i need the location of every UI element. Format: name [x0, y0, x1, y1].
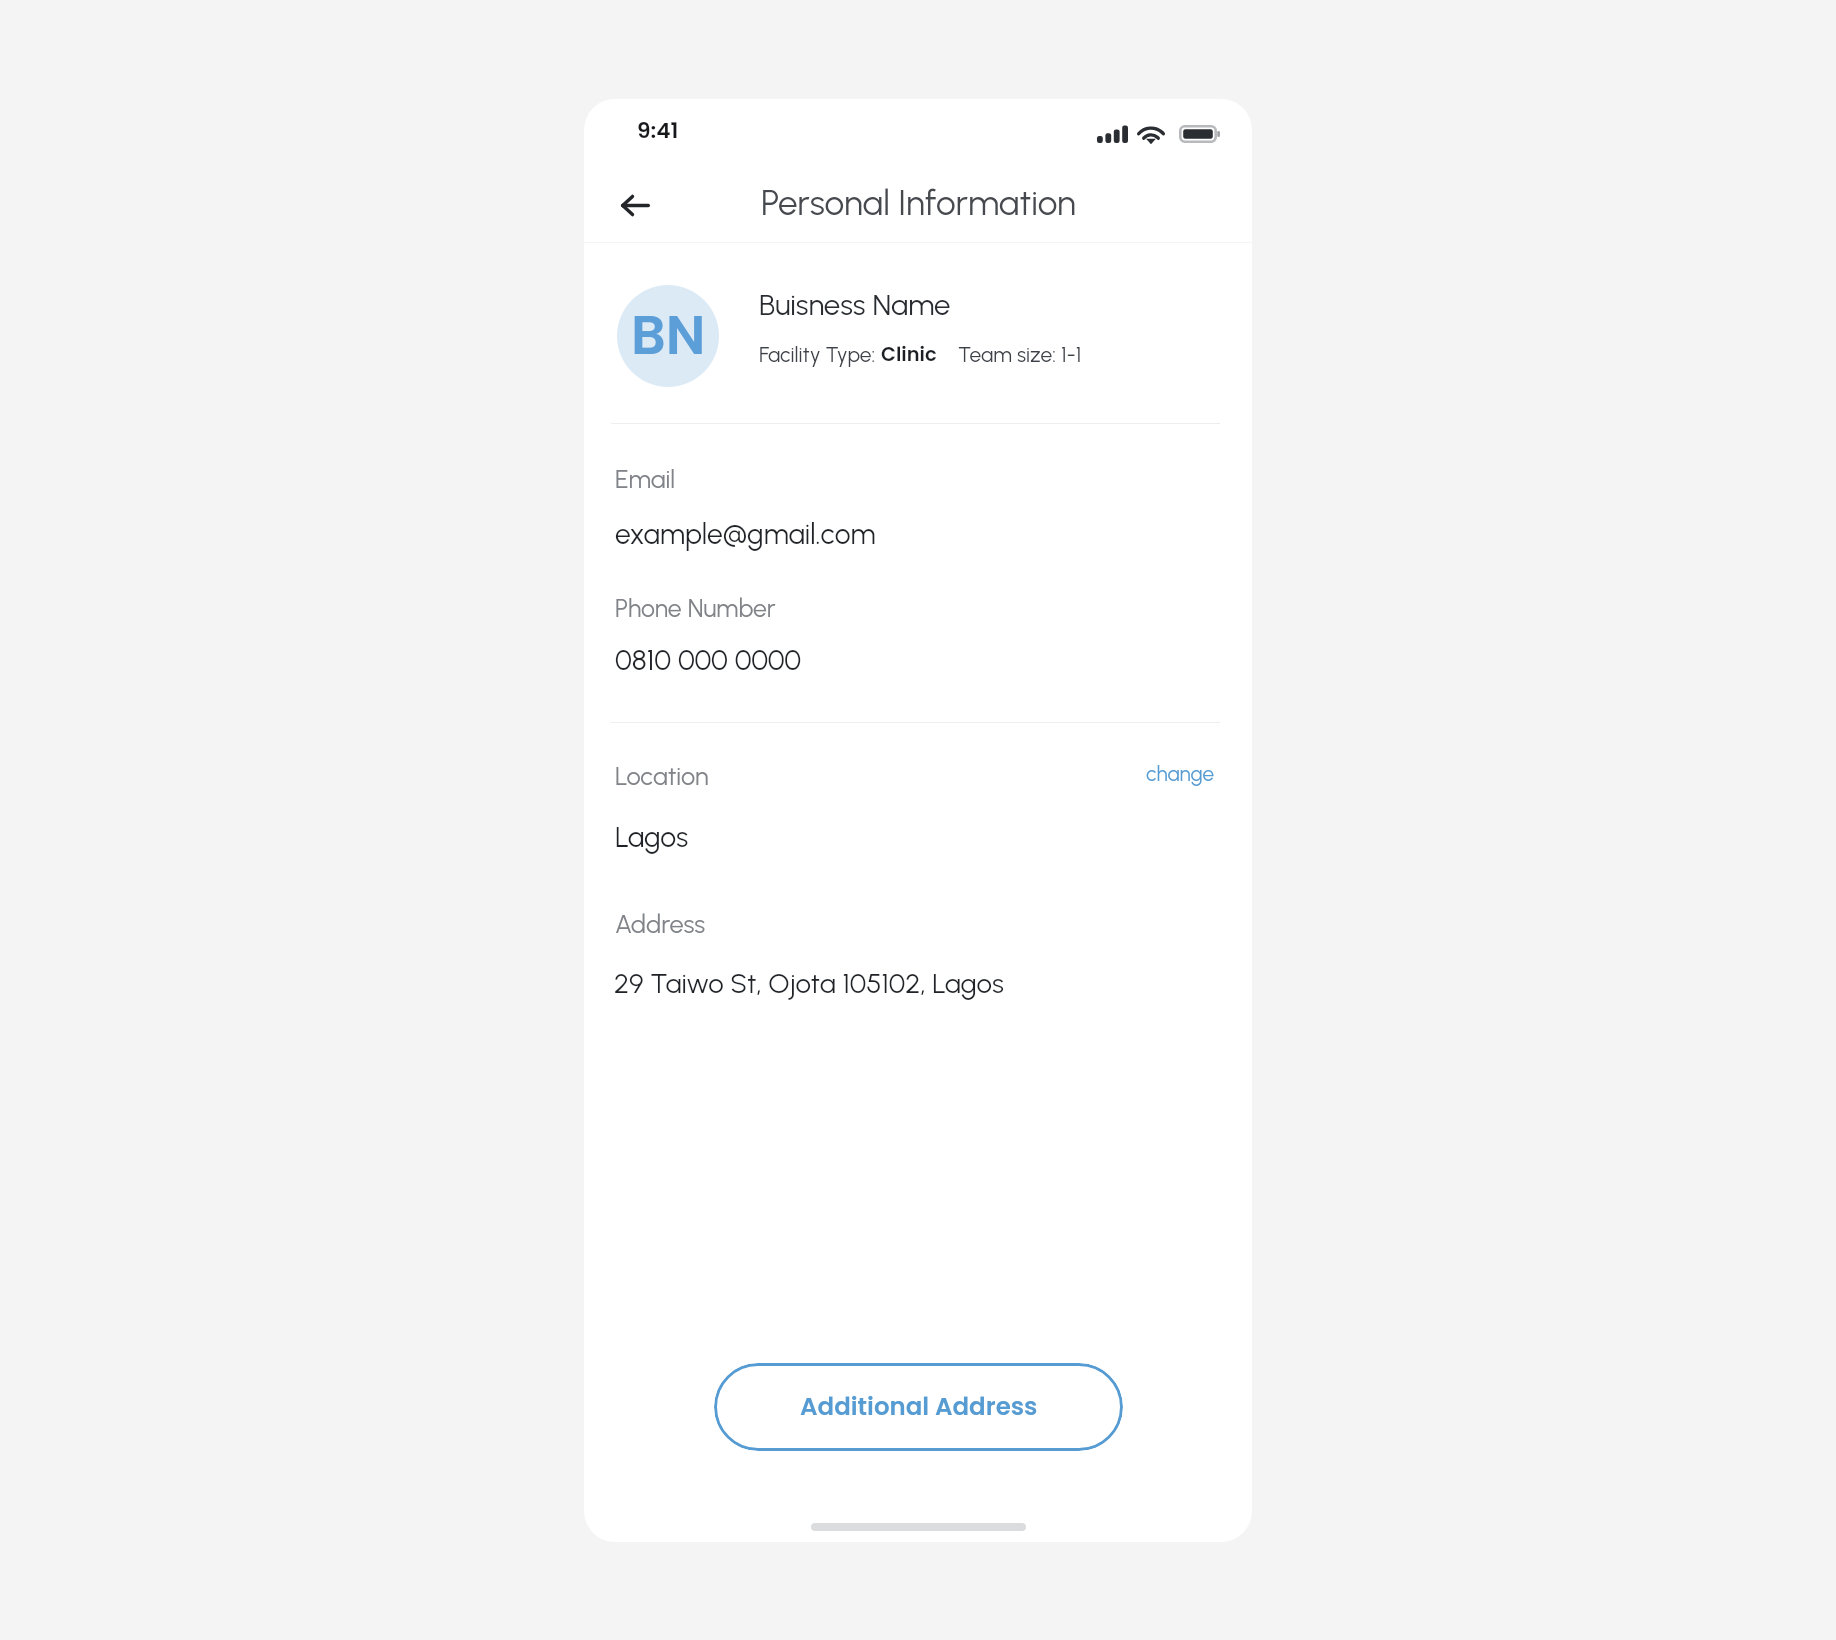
staticText: Buisness Name [759, 287, 951, 322]
staticText: Location [615, 761, 709, 791]
staticText: Team size: 1-1 [958, 342, 1082, 367]
button[interactable]: change [1135, 754, 1225, 792]
staticText: Personal Information [761, 182, 1076, 224]
staticText: 9:41 [637, 115, 679, 145]
staticText: Address [615, 909, 706, 939]
button[interactable]: Additional Address [714, 1363, 1123, 1451]
staticText: Additional Address [800, 1389, 1038, 1423]
staticText: example@gmail.com [615, 517, 876, 551]
staticText: change [1146, 761, 1215, 786]
staticText: Lagos [615, 820, 689, 854]
staticText: Clinic [881, 341, 937, 368]
staticText: Email [615, 464, 676, 494]
staticText: BN [631, 297, 706, 373]
staticText: 29 Taiwo St, Ojota 105102, Lagos [614, 967, 1004, 1000]
staticText: Facility Type: [759, 342, 881, 367]
staticText: Phone Number [615, 593, 776, 623]
button[interactable]: Back [608, 178, 662, 232]
staticText: 0810 000 0000 [615, 643, 802, 677]
